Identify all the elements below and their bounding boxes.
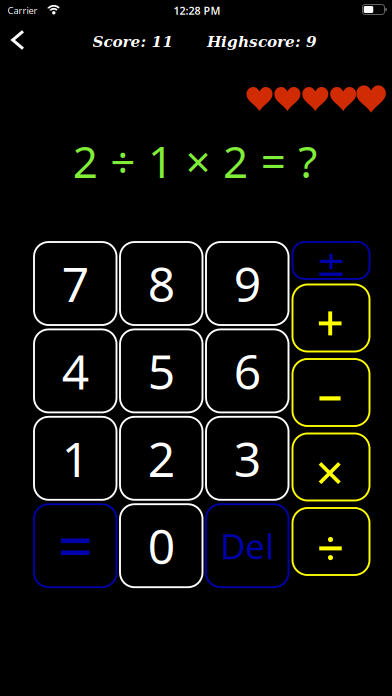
- staticText: 6: [234, 339, 261, 403]
- staticText: Score: 11: [92, 32, 173, 50]
- staticText: 12:28 PM: [173, 3, 220, 18]
- button[interactable]: 4: [34, 329, 116, 412]
- staticText: 0: [148, 514, 175, 577]
- staticText: 9: [234, 252, 261, 315]
- button[interactable]: 9: [206, 242, 288, 325]
- button[interactable]: Del: [206, 504, 288, 587]
- staticText: 3: [234, 426, 261, 490]
- button[interactable]: 0: [120, 504, 202, 587]
- staticText: 4: [62, 339, 89, 403]
- button[interactable]: 5: [120, 329, 202, 412]
- button[interactable]: 2: [120, 417, 202, 500]
- button[interactable]: =: [34, 504, 116, 587]
- staticText: Highscore: 9: [207, 32, 317, 50]
- staticText: 1: [62, 426, 89, 490]
- staticText: 2: [148, 426, 175, 490]
- button[interactable]: 8: [120, 242, 202, 325]
- staticText: 5: [148, 339, 175, 403]
- button[interactable]: 6: [206, 329, 288, 412]
- button[interactable]: ×: [292, 433, 369, 500]
- staticText: 7: [62, 252, 89, 315]
- button[interactable]: 1: [34, 417, 116, 500]
- button[interactable]: Back: [3, 22, 32, 57]
- button[interactable]: ÷: [292, 508, 369, 575]
- staticText: Del: [220, 523, 274, 569]
- staticText: Carrier: [7, 4, 37, 17]
- button[interactable]: 7: [34, 242, 116, 325]
- staticText: 8: [148, 252, 175, 315]
- button[interactable]: +: [292, 284, 369, 351]
- button[interactable]: −: [292, 359, 369, 426]
- button[interactable]: Plus Minus: [292, 242, 369, 279]
- staticText: 2 ÷ 1 × 2 = ?: [73, 132, 317, 190]
- button[interactable]: 3: [206, 417, 288, 500]
